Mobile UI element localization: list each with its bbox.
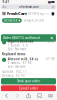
staticText: Delivered xyxy=(4,19,18,22)
button[interactable]: Dismiss xyxy=(49,36,54,40)
button[interactable]: Tabs xyxy=(45,94,56,98)
staticText: Track your order xyxy=(17,79,40,83)
button[interactable]: Forward xyxy=(12,93,23,98)
button[interactable]: Bookmarks xyxy=(34,93,45,98)
button[interactable]: Aa xyxy=(1,4,56,9)
button[interactable]: Cart xyxy=(50,10,55,16)
staticText: freshcart.com xyxy=(21,5,38,9)
staticText: Organic bananas xyxy=(8,40,33,43)
staticText: 2 cartons · $7.98 xyxy=(8,61,32,65)
staticText: ▮▮▮ xyxy=(48,0,51,3)
staticText: delivery xyxy=(28,12,39,15)
staticText: Cancel order xyxy=(19,87,38,90)
staticText: Order #84712 confirmed xyxy=(3,36,40,40)
staticText: FreshCart xyxy=(7,11,27,16)
staticText: Subtotal $42.17 xyxy=(2,70,27,73)
staticText: Sign in xyxy=(39,12,49,15)
staticText: Aa xyxy=(3,5,6,9)
staticText: 9:41 xyxy=(2,0,9,4)
button[interactable]: Sign in xyxy=(39,12,50,15)
staticText: Delivery $3.99 xyxy=(2,74,25,77)
button[interactable]: Cancel order xyxy=(1,85,56,91)
button[interactable]: Share xyxy=(23,93,34,98)
button[interactable]: Menu xyxy=(1,10,6,16)
staticText: Replaced items xyxy=(2,52,25,56)
staticText: Total $46.16 xyxy=(2,78,26,82)
staticText: Sub: Fair-trade xyxy=(8,47,27,51)
staticText: Sub: Oat milk xyxy=(8,65,25,68)
staticText: Today 4:20 pm xyxy=(23,19,43,22)
staticText: $2.49 xyxy=(46,40,55,43)
staticText: Almond milk, 64 oz xyxy=(8,57,38,61)
button[interactable]: Track your order xyxy=(1,78,56,84)
staticText: 1 bunch · 6 ct xyxy=(8,44,28,47)
button[interactable]: Back xyxy=(1,93,12,98)
button[interactable]: Delivered xyxy=(2,18,22,23)
staticText: $7.98 xyxy=(46,57,55,61)
